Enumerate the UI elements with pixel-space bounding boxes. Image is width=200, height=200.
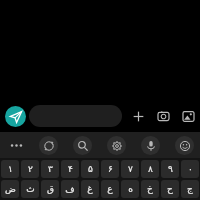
staticText: ق [47,184,54,194]
staticText: ج [187,184,193,194]
staticText: ۹ [168,164,173,174]
staticText: ۸ [148,164,153,174]
staticText: غ [87,184,93,194]
button[interactable]: ۱ [1,160,19,178]
button[interactable]: ه [121,180,139,198]
button[interactable]: ۸ [141,160,159,178]
staticText: ۴ [68,164,73,174]
button[interactable]: Message input [29,105,122,127]
button[interactable]: Translate [39,136,58,155]
button[interactable]: ح [161,180,179,198]
button[interactable]: Send [5,106,26,127]
staticText: ۵ [88,164,93,174]
staticText: ۰ [188,164,193,174]
staticText: ف [65,184,75,194]
staticText: ۲ [28,164,33,174]
staticText: ع [107,184,113,194]
staticText: ۳ [48,164,53,174]
button[interactable]: ۴ [61,160,79,178]
staticText: ث [26,184,35,194]
staticText: ح [167,184,173,194]
button[interactable]: ض [1,180,19,198]
button[interactable]: More options [7,136,25,154]
button[interactable]: خ [141,180,159,198]
button[interactable]: ۲ [21,160,39,178]
button[interactable]: ۵ [81,160,99,178]
button[interactable]: Gallery [179,107,197,125]
button[interactable]: ج [181,180,199,198]
staticText: ض [5,184,16,194]
button[interactable]: ۷ [121,160,139,178]
button[interactable]: Camera [154,107,172,125]
button[interactable]: ق [41,180,59,198]
button[interactable]: Voice input [141,136,160,155]
staticText: خ [147,184,153,194]
button[interactable]: ۶ [101,160,119,178]
staticText: ه [128,184,133,194]
button[interactable]: Emoji [175,136,194,155]
button[interactable]: Attach [129,107,147,125]
button[interactable]: غ [81,180,99,198]
button[interactable]: ث [21,180,39,198]
staticText: ۶ [108,164,113,174]
button[interactable]: Settings [107,136,126,155]
button[interactable]: ع [101,180,119,198]
staticText: ۷ [128,164,133,174]
button[interactable]: ۹ [161,160,179,178]
button[interactable]: ۰ [181,160,199,178]
button[interactable]: ف [61,180,79,198]
button[interactable]: ۳ [41,160,59,178]
staticText: ۱ [8,164,13,174]
button[interactable]: Search [73,136,92,155]
